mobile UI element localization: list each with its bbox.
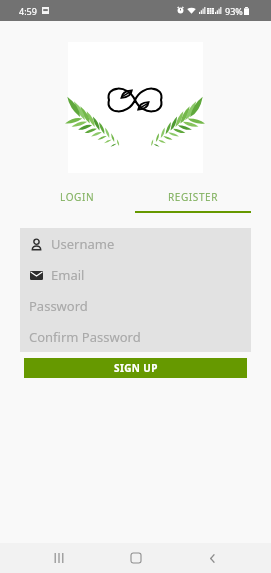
staticText: Password	[29, 297, 88, 315]
button[interactable]: Confirm Password	[20, 321, 251, 352]
staticText: Username	[51, 235, 115, 253]
button[interactable]: Username	[20, 228, 251, 259]
staticText: Email	[51, 266, 85, 284]
button[interactable]: Email	[20, 259, 251, 290]
button[interactable]: LOGIN	[20, 183, 135, 211]
staticText: SIGN UP	[114, 361, 158, 375]
staticText: Confirm Password	[29, 328, 141, 346]
button[interactable]: Recents	[42, 543, 76, 573]
staticText: 93%	[225, 5, 243, 17]
button[interactable]: Password	[20, 290, 251, 321]
button[interactable]: REGISTER	[135, 183, 251, 211]
staticText: 4:59	[19, 5, 37, 17]
staticText: REGISTER	[168, 190, 219, 204]
button[interactable]: Home	[119, 543, 153, 573]
button[interactable]: SIGN UP	[24, 358, 247, 378]
staticText: LOGIN	[60, 190, 95, 204]
button[interactable]: Back	[195, 543, 229, 573]
